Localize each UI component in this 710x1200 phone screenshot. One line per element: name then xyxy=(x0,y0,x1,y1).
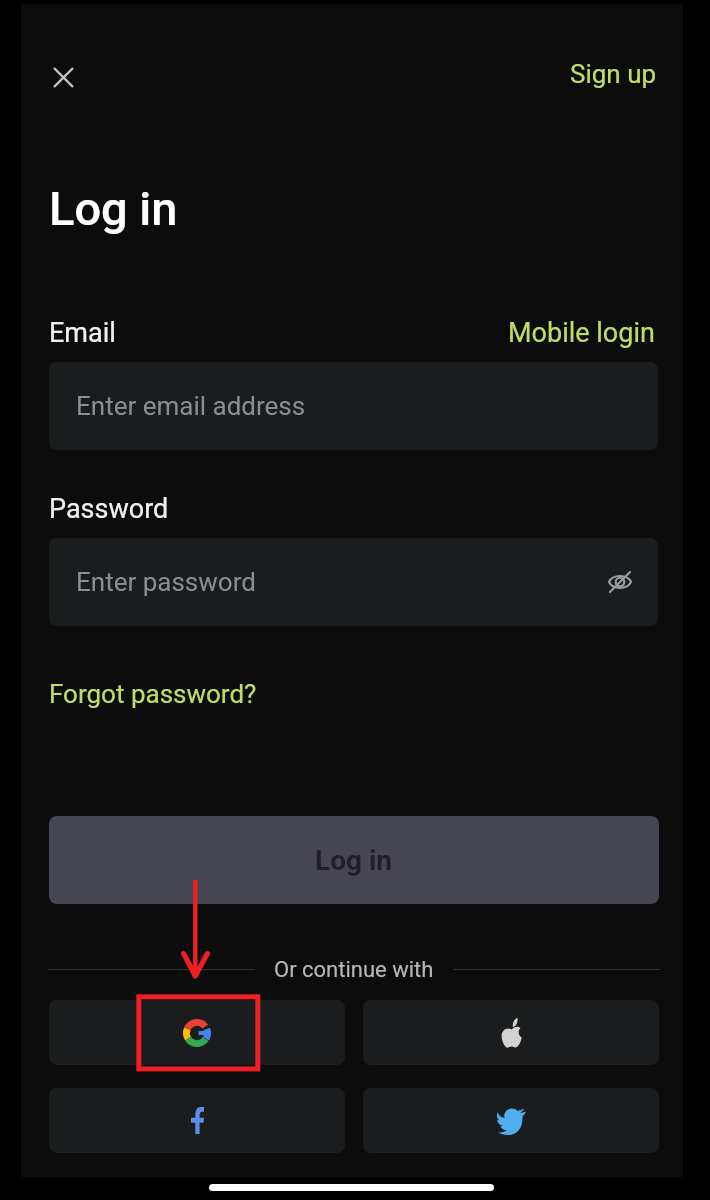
staticText: Enter email address xyxy=(76,391,306,421)
button[interactable]: Forgot password? xyxy=(37,669,269,719)
staticText: Email xyxy=(49,317,116,349)
staticText: Mobile login xyxy=(508,317,655,349)
button[interactable]: Show password xyxy=(598,560,642,604)
button[interactable]: Sign in with Apple xyxy=(363,1000,659,1065)
button[interactable]: Sign up xyxy=(558,51,670,97)
staticText: Log in xyxy=(315,844,393,877)
staticText: Log in xyxy=(49,181,178,236)
button[interactable]: Mobile login xyxy=(496,313,667,353)
staticText: Forgot password? xyxy=(49,679,257,709)
staticText: Sign up xyxy=(570,59,657,89)
button[interactable]: Enter password xyxy=(49,538,658,626)
staticText: Or continue with xyxy=(274,957,434,983)
button[interactable]: Close xyxy=(39,53,87,101)
button[interactable]: Sign in with Twitter xyxy=(363,1088,659,1153)
staticText: Password xyxy=(49,493,169,525)
button[interactable]: Enter email address xyxy=(49,362,658,450)
button[interactable]: Sign in with Facebook xyxy=(49,1088,345,1153)
button[interactable]: Log in xyxy=(49,816,659,904)
staticText: Enter password xyxy=(76,567,256,597)
button[interactable]: Sign in with Google xyxy=(49,1000,345,1065)
